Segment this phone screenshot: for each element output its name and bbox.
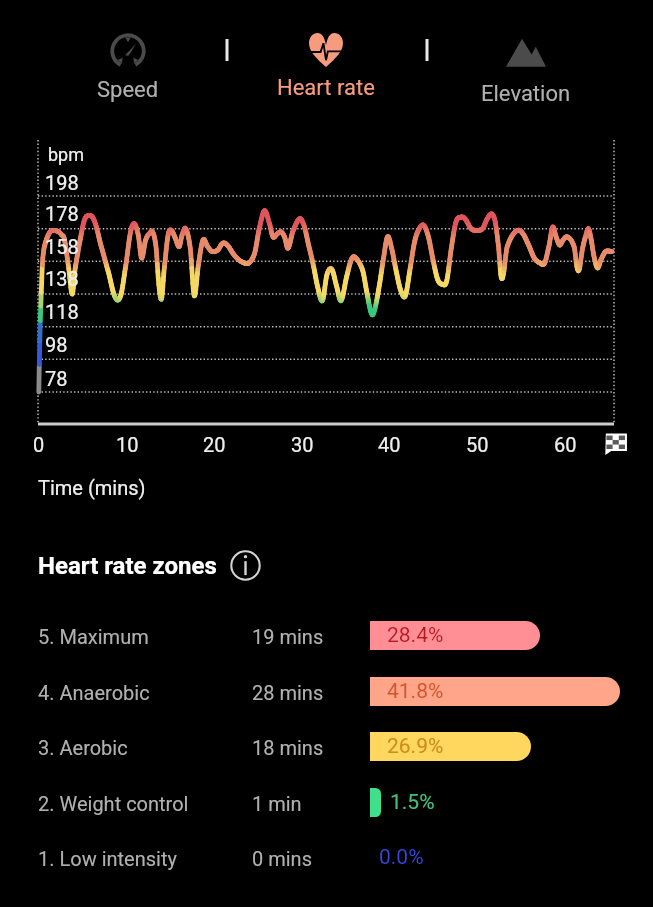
staticText: 20 bbox=[203, 433, 226, 456]
staticText: 28 mins bbox=[252, 681, 324, 704]
staticText: 1.5% bbox=[390, 790, 435, 815]
staticText: 118 bbox=[45, 300, 79, 323]
staticText: Heart rate bbox=[277, 75, 375, 101]
staticText: 0 mins bbox=[252, 847, 312, 870]
staticText: 138 bbox=[45, 267, 79, 290]
staticText: 19 mins bbox=[252, 625, 324, 648]
staticText: 78 bbox=[45, 367, 68, 390]
button[interactable]: Heart rate bbox=[246, 33, 406, 101]
staticText: 28.4% bbox=[387, 623, 444, 648]
staticText: 50 bbox=[466, 433, 489, 456]
staticText: 18 mins bbox=[252, 736, 324, 759]
staticText: Heart rate zones bbox=[38, 552, 217, 580]
button[interactable]: 3. Aerobic bbox=[0, 727, 653, 771]
staticText: 60 bbox=[554, 433, 577, 456]
staticText: Elevation bbox=[481, 81, 571, 107]
staticText: 2. Weight control bbox=[38, 792, 189, 815]
staticText: 0.0% bbox=[379, 845, 424, 870]
staticText: 1. Low intensity bbox=[38, 847, 177, 870]
button[interactable]: 4. Anaerobic bbox=[0, 672, 653, 716]
button[interactable]: Elevation bbox=[446, 33, 606, 107]
staticText: bpm bbox=[48, 144, 84, 165]
staticText: 30 bbox=[291, 433, 314, 456]
staticText: 178 bbox=[45, 202, 79, 225]
other: Info bbox=[230, 550, 261, 581]
other: Finish bbox=[602, 431, 628, 457]
staticText: 41.8% bbox=[387, 679, 444, 704]
button[interactable]: 5. Maximum bbox=[0, 616, 653, 660]
staticText: 4. Anaerobic bbox=[38, 681, 150, 704]
staticText: 5. Maximum bbox=[38, 625, 149, 648]
button[interactable]: Speed bbox=[48, 33, 208, 103]
staticText: 3. Aerobic bbox=[38, 736, 128, 759]
staticText: Time (mins) bbox=[38, 476, 146, 499]
staticText: 198 bbox=[45, 171, 79, 194]
staticText: 10 bbox=[116, 433, 139, 456]
other: Heart rate bbox=[309, 33, 343, 67]
staticText: 1 min bbox=[252, 792, 302, 815]
staticText: 158 bbox=[45, 235, 79, 258]
staticText: 0 bbox=[33, 433, 45, 456]
button[interactable]: 2. Weight control bbox=[0, 783, 653, 827]
other: Speed bbox=[110, 33, 146, 69]
button[interactable]: Heart rate zones bbox=[38, 550, 261, 581]
staticText: 40 bbox=[378, 433, 401, 456]
staticText: 26.9% bbox=[387, 734, 444, 759]
button[interactable]: 1. Low intensity bbox=[0, 838, 653, 882]
other: Elevation bbox=[506, 33, 546, 73]
staticText: Speed bbox=[97, 77, 159, 103]
staticText: 98 bbox=[45, 333, 68, 356]
